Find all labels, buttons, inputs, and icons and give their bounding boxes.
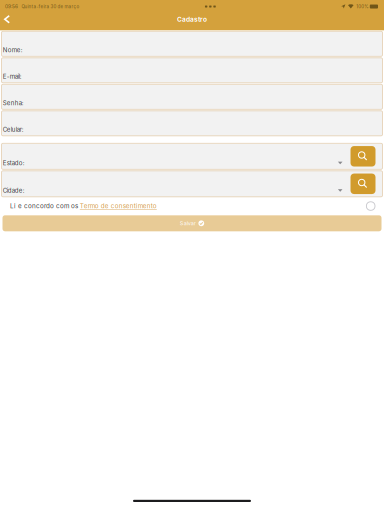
- staticText: Salvar: [180, 220, 196, 227]
- button[interactable]: Salvar: [2, 215, 381, 231]
- staticText: Termo de consentimento: [80, 202, 157, 210]
- button[interactable]: Nome:: [1, 31, 382, 56]
- button[interactable]: Buscar Estado:: [350, 146, 375, 167]
- staticText: Quinta-feira 30 de março: [21, 4, 79, 9]
- staticText: 09:56: [5, 4, 18, 9]
- staticText: Nome:: [3, 46, 23, 54]
- staticText: E-mail:: [3, 73, 22, 80]
- button[interactable]: Aceitar termo de consentimento: [366, 202, 384, 210]
- button[interactable]: E-mail:: [1, 58, 382, 83]
- staticText: 100%: [356, 4, 368, 9]
- button[interactable]: Senha:: [1, 84, 382, 109]
- staticText: Cadastro: [177, 15, 207, 23]
- button[interactable]: Li e concordo com os: [0, 202, 157, 210]
- button[interactable]: Buscar Cidade:: [350, 174, 375, 194]
- button[interactable]: Voltar: [0, 13, 14, 25]
- staticText: Li e concordo com os: [10, 202, 78, 210]
- staticText: Cidade:: [3, 187, 25, 194]
- staticText: Estado:: [3, 159, 25, 167]
- button[interactable]: Celular:: [1, 111, 382, 136]
- staticText: Senha:: [3, 99, 24, 107]
- staticText: Celular:: [3, 126, 24, 133]
